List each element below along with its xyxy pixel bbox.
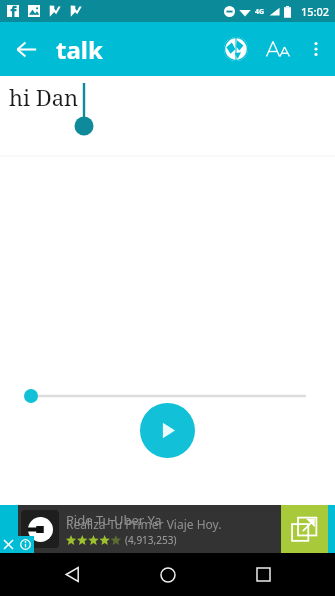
button[interactable]: Back — [48, 553, 96, 596]
button[interactable]: Play — [140, 403, 195, 458]
button[interactable]: Position — [0, 384, 335, 408]
staticText: Pide Tu Uber Ya — [66, 511, 162, 529]
staticText: (4,913,253) — [125, 533, 177, 547]
staticText: hi Dan — [9, 82, 79, 112]
staticText: 15:02 — [301, 4, 330, 19]
button[interactable]: Back — [6, 29, 46, 69]
button[interactable]: Recent apps — [239, 553, 287, 596]
button[interactable]: Open ad — [281, 505, 328, 553]
staticText: Realiza Tu Primer Viaje Hoy. — [66, 516, 222, 532]
staticText: talk — [56, 33, 103, 66]
button[interactable]: More options — [299, 32, 333, 66]
staticText: 4G — [255, 7, 265, 17]
button[interactable]: Text size — [257, 28, 299, 70]
button[interactable]: Pide Tu Uber Ya — [18, 505, 281, 553]
button[interactable]: Home — [144, 553, 192, 596]
button[interactable]: hi Dan — [0, 76, 335, 505]
button[interactable]: Ad information — [17, 536, 34, 553]
button[interactable]: Close ad — [0, 536, 17, 553]
button[interactable]: Translate — [215, 28, 257, 70]
